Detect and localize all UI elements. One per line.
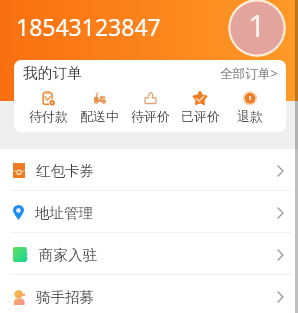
- staticText: 我的订单: [23, 64, 82, 83]
- button[interactable]: 退款: [225, 86, 275, 132]
- staticText: 地址管理: [35, 204, 93, 222]
- button[interactable]: 骑手招募: [0, 275, 298, 313]
- staticText: 待评价: [131, 109, 170, 125]
- staticText: 退款: [237, 109, 263, 125]
- button[interactable]: 地址管理: [0, 191, 298, 232]
- button[interactable]: 待付款: [23, 86, 74, 132]
- staticText: 骑手招募: [36, 288, 94, 306]
- staticText: 1: [248, 4, 266, 46]
- staticText: 全部订单>: [220, 65, 278, 82]
- staticText: 18543123847: [16, 11, 161, 42]
- button[interactable]: 商家入驻: [0, 233, 298, 274]
- button[interactable]: 配送中: [74, 86, 125, 132]
- button[interactable]: 全部订单>: [220, 65, 278, 82]
- staticText: 待付款: [29, 109, 68, 125]
- button[interactable]: 已评价: [175, 86, 225, 132]
- staticText: 商家入驻: [39, 246, 97, 264]
- button[interactable]: Profile avatar: [228, 0, 286, 57]
- staticText: 红包卡券: [36, 162, 94, 180]
- staticText: 配送中: [80, 109, 119, 125]
- staticText: 已评价: [181, 109, 220, 125]
- button[interactable]: 待评价: [125, 86, 175, 132]
- button[interactable]: 红包卡券: [0, 149, 298, 190]
